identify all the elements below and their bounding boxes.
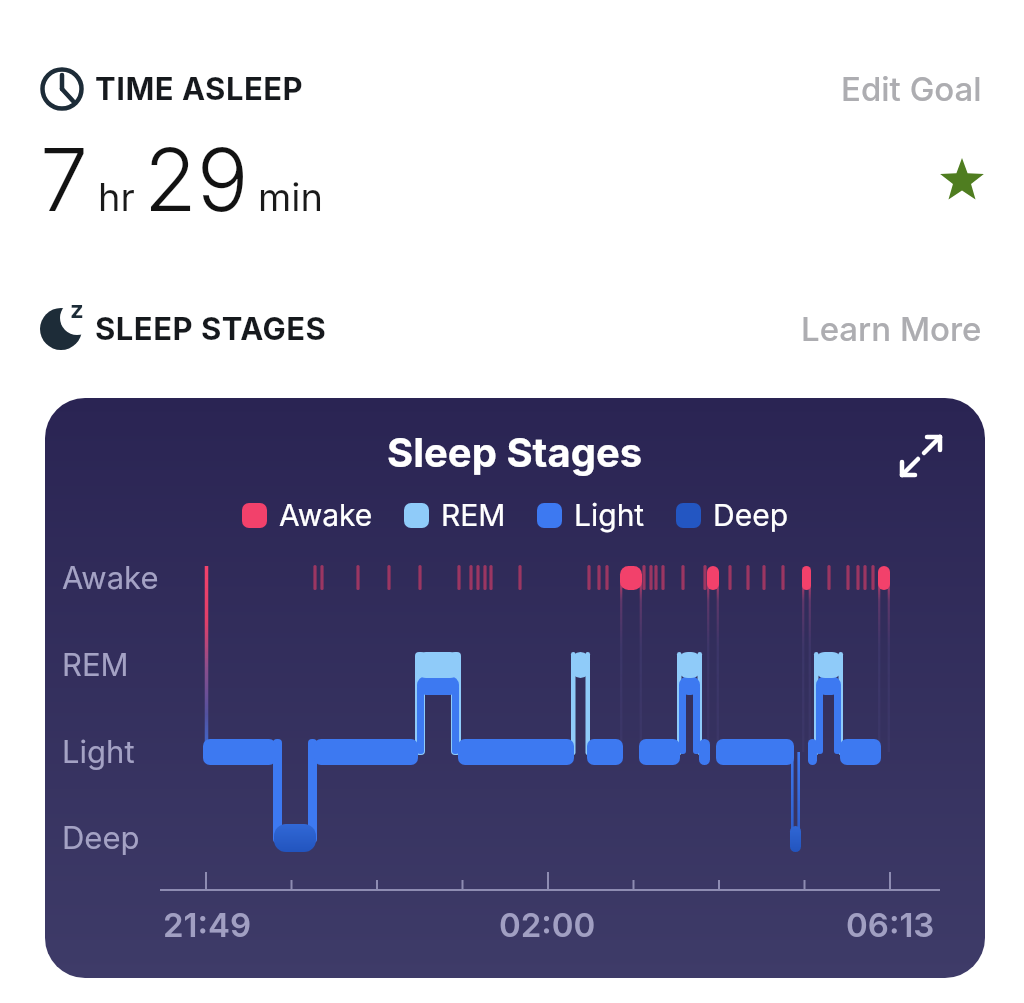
button[interactable]: Sleep Stages	[45, 398, 985, 978]
staticText: 21:49	[163, 905, 252, 945]
staticText: 02:00	[499, 905, 596, 945]
staticText: min	[258, 174, 323, 220]
staticText: SLEEP STAGES	[95, 310, 327, 348]
staticText: 29	[144, 128, 249, 232]
staticText: 7	[40, 128, 89, 232]
staticText: Deep	[713, 497, 788, 533]
staticText: TIME ASLEEP	[95, 70, 304, 108]
button[interactable]: Edit Goal	[682, 69, 982, 109]
staticText: REM	[441, 497, 506, 533]
button[interactable]	[894, 429, 948, 483]
staticText: Awake	[62, 559, 159, 597]
staticText: z	[70, 295, 84, 324]
staticText: Sleep Stages	[387, 428, 643, 476]
staticText: Deep	[62, 819, 140, 857]
staticText: 06:13	[846, 905, 935, 945]
staticText: Awake	[279, 497, 373, 533]
staticText: Light	[62, 733, 135, 771]
button[interactable]: Learn More	[682, 309, 982, 349]
staticText: REM	[62, 646, 129, 684]
staticText: Light	[574, 497, 645, 533]
staticText: hr	[98, 174, 135, 220]
staticText: Learn More	[801, 309, 982, 349]
staticText: Edit Goal	[841, 69, 982, 109]
